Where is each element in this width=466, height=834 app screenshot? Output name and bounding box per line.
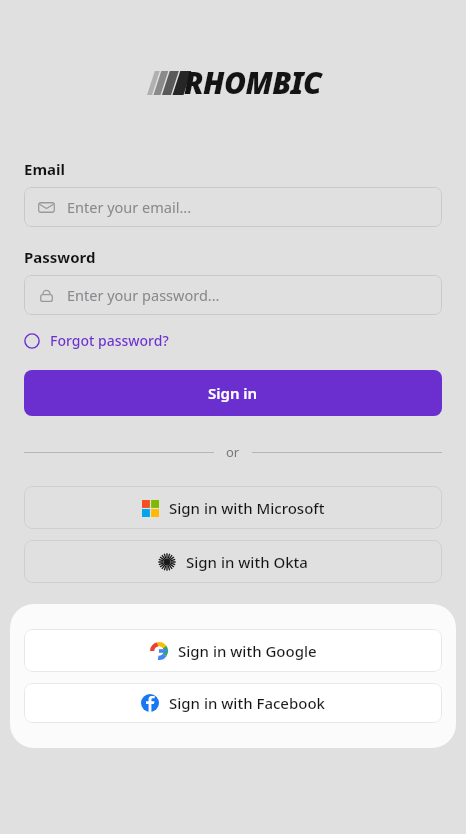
button[interactable]: Enter your email... [24, 187, 442, 227]
staticText: Sign in with Facebook [169, 693, 325, 713]
staticText: RHOMBIC [184, 62, 322, 103]
staticText: Forgot password? [50, 331, 169, 350]
button[interactable]: Forgot password? [24, 329, 169, 352]
button[interactable]: Sign in with Facebook [24, 683, 442, 723]
staticText: Enter your password... [67, 285, 220, 305]
button[interactable]: Sign in with Google [24, 629, 442, 672]
staticText: Email [24, 159, 65, 179]
button[interactable]: Sign in with Microsoft [24, 486, 442, 529]
button[interactable]: Sign in [24, 370, 442, 416]
staticText: Sign in with Google [178, 641, 317, 661]
button[interactable]: Sign in with Okta [24, 540, 442, 583]
staticText: Sign in with Microsoft [169, 498, 325, 518]
staticText: or [226, 443, 240, 461]
staticText: Enter your email... [67, 197, 192, 217]
staticText: Sign in [208, 383, 258, 403]
staticText: Password [24, 247, 96, 267]
button[interactable]: Enter your password... [24, 275, 442, 315]
staticText: Sign in with Okta [186, 552, 308, 572]
